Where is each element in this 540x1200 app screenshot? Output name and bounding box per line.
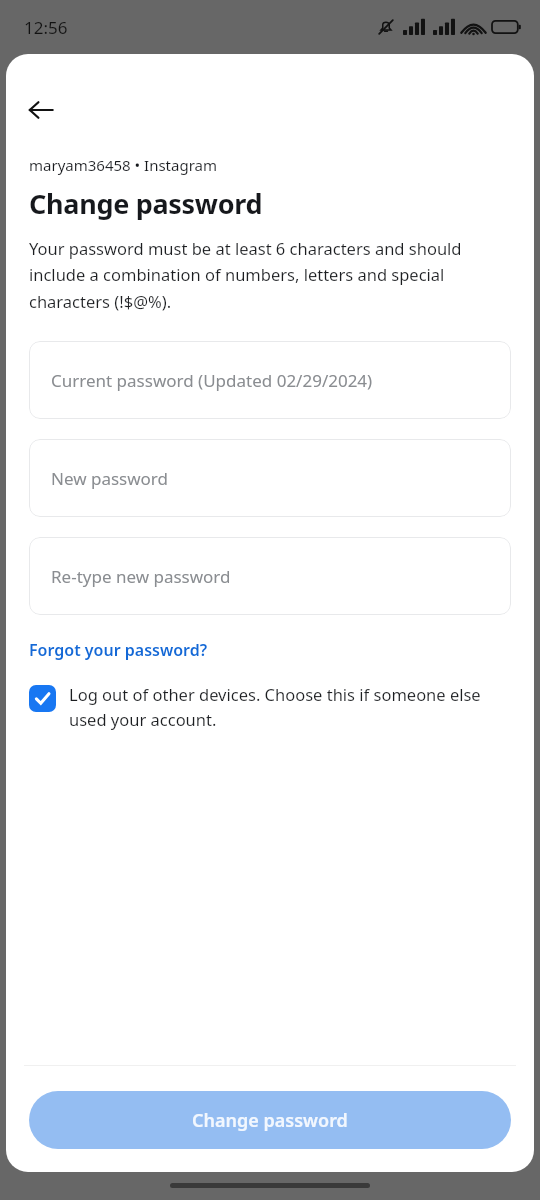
- staticText: Log out of other devices. Choose this if…: [69, 683, 510, 730]
- staticText: maryam36458 • Instagram: [29, 155, 217, 175]
- button[interactable]: Back: [17, 86, 65, 134]
- staticText: Current password (Updated 02/29/2024): [51, 369, 373, 392]
- staticText: 12:56: [24, 16, 68, 39]
- button[interactable]: New password: [29, 439, 511, 517]
- button[interactable]: Re-type new password: [29, 537, 511, 615]
- button[interactable]: Change password: [29, 1091, 511, 1149]
- button[interactable]: Current password (Updated 02/29/2024): [29, 341, 511, 419]
- button[interactable]: Forgot your password?: [29, 639, 208, 661]
- button[interactable]: Log out of other devices. Choose this if…: [29, 683, 510, 730]
- staticText: Change password: [29, 185, 263, 222]
- staticText: Your password must be at least 6 charact…: [29, 237, 508, 313]
- staticText: Re-type new password: [51, 565, 231, 588]
- staticText: Change password: [192, 1108, 348, 1133]
- staticText: New password: [51, 467, 169, 490]
- staticText: Forgot your password?: [29, 639, 208, 661]
